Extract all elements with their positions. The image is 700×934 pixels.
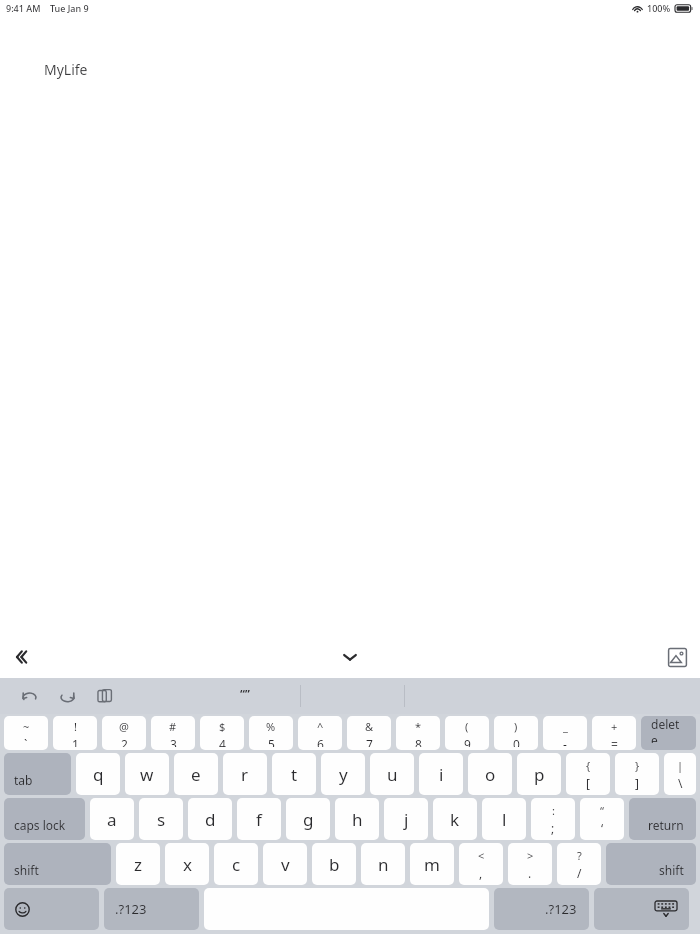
staticText: ` (24, 736, 28, 747)
staticText: MyLife (44, 60, 88, 79)
staticText: Tue Jan 9 (50, 2, 89, 14)
button[interactable]: caps lock (4, 798, 85, 840)
button[interactable]: y (321, 753, 365, 795)
staticText: & (365, 719, 374, 734)
button[interactable]: g (286, 798, 330, 840)
button[interactable]: p (517, 753, 561, 795)
button[interactable]: # (151, 716, 195, 750)
staticText: % (266, 719, 276, 734)
button[interactable]: .?123 (104, 888, 199, 930)
button[interactable]: @ (102, 716, 146, 750)
button[interactable]: x (165, 843, 209, 885)
staticText: | (677, 758, 684, 773)
button[interactable]: q (76, 753, 120, 795)
staticText: 2 (121, 736, 128, 747)
button[interactable]: { (566, 753, 610, 795)
button[interactable]: l (482, 798, 526, 840)
staticText: o (485, 763, 496, 786)
staticText: j (404, 808, 409, 831)
button[interactable]: s (139, 798, 183, 840)
staticText: $ (219, 719, 226, 734)
staticText: y (339, 763, 348, 786)
button[interactable]: shift (4, 843, 111, 885)
button[interactable]: ) (494, 716, 538, 750)
staticText: .?123 (115, 900, 147, 918)
button[interactable]: b (312, 843, 356, 885)
button[interactable]: h (335, 798, 379, 840)
button[interactable]: j (384, 798, 428, 840)
button[interactable]: Redo (52, 681, 82, 711)
button[interactable]: Emoji (4, 888, 99, 930)
button[interactable]: i (419, 753, 463, 795)
button[interactable]: shift (606, 843, 696, 885)
button[interactable]: k (433, 798, 477, 840)
button[interactable]: m (410, 843, 454, 885)
button[interactable]: + (592, 716, 636, 750)
staticText: n (378, 853, 389, 876)
staticText: ( (465, 719, 469, 734)
staticText: shift (14, 862, 39, 878)
staticText: ? (577, 848, 582, 863)
button[interactable]: Back (6, 640, 40, 674)
button[interactable]: ~ (4, 716, 48, 750)
button[interactable]: a (90, 798, 134, 840)
button[interactable]: > (508, 843, 552, 885)
staticText: * (415, 719, 422, 734)
button[interactable]: d (188, 798, 232, 840)
button[interactable]: % (249, 716, 293, 750)
staticText: < (478, 848, 485, 863)
staticText: a (107, 808, 117, 831)
button[interactable]: Undo (14, 681, 44, 711)
button[interactable]: Collapse (333, 640, 367, 674)
button[interactable]: tab (4, 753, 71, 795)
button[interactable]: Insert photo (662, 642, 692, 672)
staticText: ) (514, 719, 518, 734)
button[interactable]: Hide keyboard (594, 888, 689, 930)
button[interactable]: $ (200, 716, 244, 750)
button[interactable]: } (615, 753, 659, 795)
staticText: - (563, 736, 567, 747)
button[interactable]: n (361, 843, 405, 885)
button[interactable]: e (174, 753, 218, 795)
staticText: ^ (317, 719, 324, 734)
button[interactable]: u (370, 753, 414, 795)
staticText: , (479, 865, 483, 881)
button[interactable]: r (223, 753, 267, 795)
button[interactable]: delete (641, 716, 696, 750)
button[interactable]: z (116, 843, 160, 885)
staticText: d (205, 808, 216, 831)
staticText: u (387, 763, 398, 786)
button[interactable]: * (396, 716, 440, 750)
button[interactable]: return (629, 798, 696, 840)
button[interactable]: : (531, 798, 575, 840)
staticText: . (528, 865, 532, 881)
button[interactable]: ( (445, 716, 489, 750)
staticText: 9:41 AM (6, 2, 41, 14)
staticText: @ (119, 719, 129, 734)
button[interactable]: < (459, 843, 503, 885)
staticText: ~ (23, 719, 30, 734)
button[interactable]: o (468, 753, 512, 795)
staticText: + (611, 719, 618, 734)
button[interactable]: f (237, 798, 281, 840)
button[interactable]: “ (580, 798, 624, 840)
button[interactable]: ^ (298, 716, 342, 750)
staticText: x (183, 853, 192, 876)
button[interactable]: v (263, 843, 307, 885)
button[interactable]: | (664, 753, 696, 795)
button[interactable]: t (272, 753, 316, 795)
button[interactable]: Paste (90, 681, 120, 711)
button[interactable]: ? (557, 843, 601, 885)
button[interactable]: c (214, 843, 258, 885)
button[interactable]: _ (543, 716, 587, 750)
staticText: 4 (219, 736, 226, 747)
staticText: w (140, 763, 154, 786)
staticText: f (256, 808, 262, 831)
staticText: ‘ (601, 820, 604, 836)
button[interactable]: w (125, 753, 169, 795)
button[interactable]: .?123 (494, 888, 589, 930)
button[interactable]: ! (53, 716, 97, 750)
button[interactable]: & (347, 716, 391, 750)
staticText: z (134, 853, 142, 876)
